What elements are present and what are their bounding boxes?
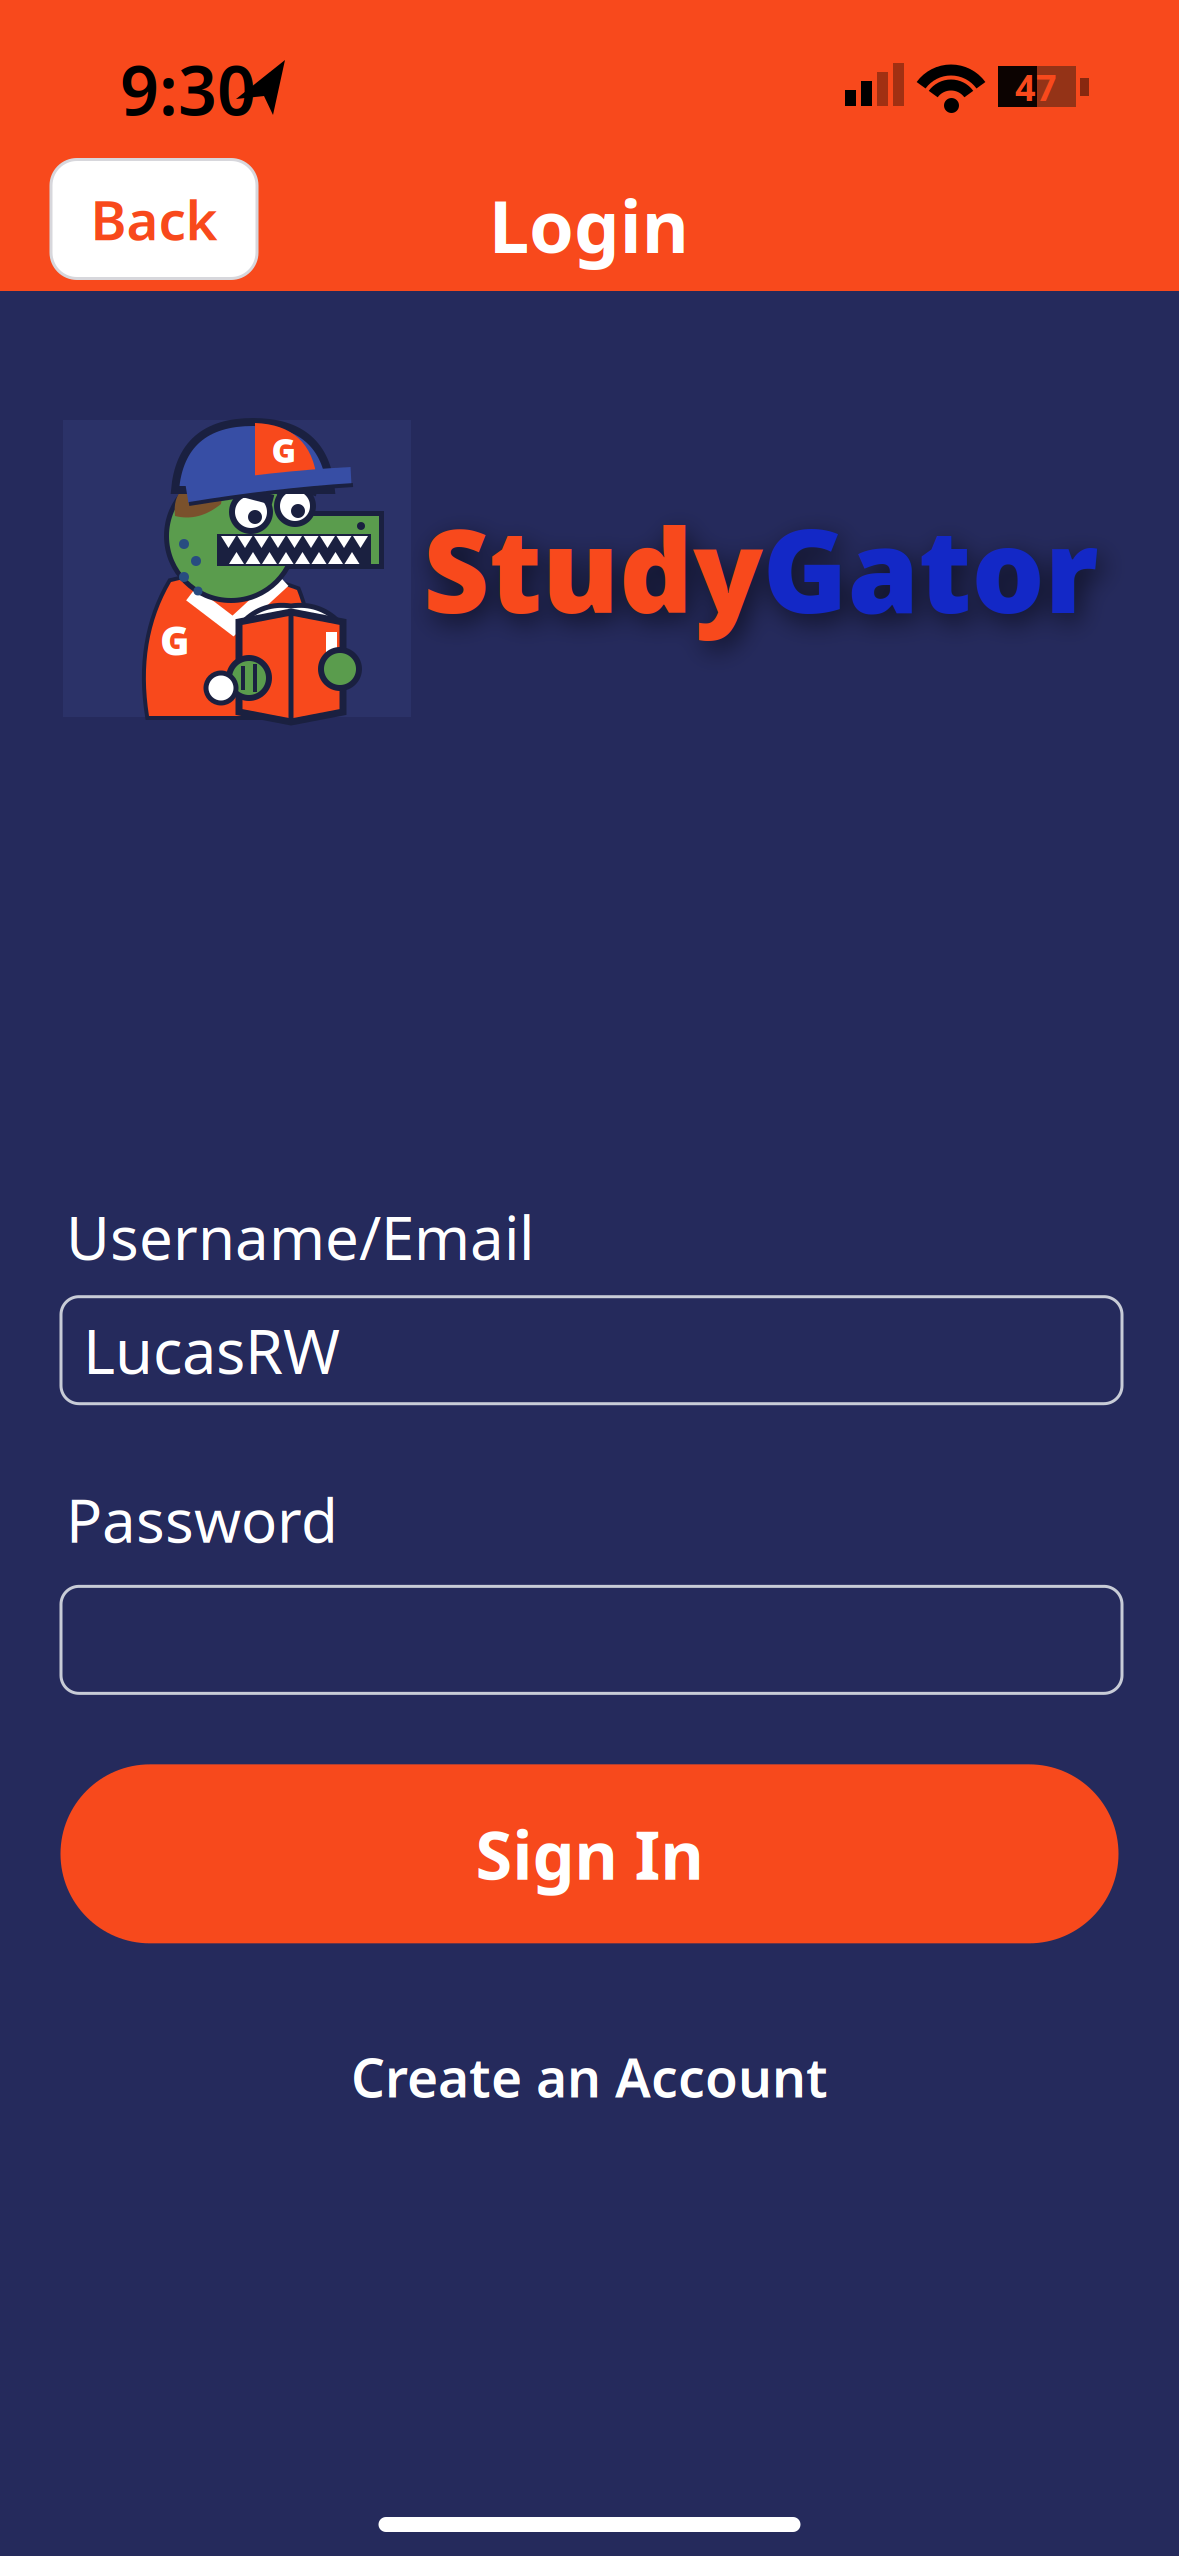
staticText: Gator: [763, 492, 1099, 645]
button[interactable]: LucasRW: [61, 1297, 1122, 1404]
button[interactable]: Back: [51, 159, 257, 278]
staticText: Study: [423, 492, 763, 645]
button[interactable]: Sign In: [60, 1764, 1118, 1943]
staticText: Back: [90, 183, 217, 255]
button[interactable]: [61, 1586, 1122, 1693]
staticText: Username/Email: [66, 1197, 534, 1277]
staticText: 9:30: [120, 44, 256, 134]
button[interactable]: Create an Account: [351, 2041, 828, 2112]
staticText: LucasRW: [83, 1309, 340, 1391]
staticText: G: [271, 428, 296, 472]
staticText: Password: [66, 1480, 338, 1559]
staticText: Login: [489, 177, 689, 273]
staticText: Sign In: [475, 1810, 703, 1898]
staticText: Create an Account: [351, 2041, 828, 2112]
staticText: G: [160, 613, 190, 666]
staticText: 47: [1015, 63, 1057, 111]
